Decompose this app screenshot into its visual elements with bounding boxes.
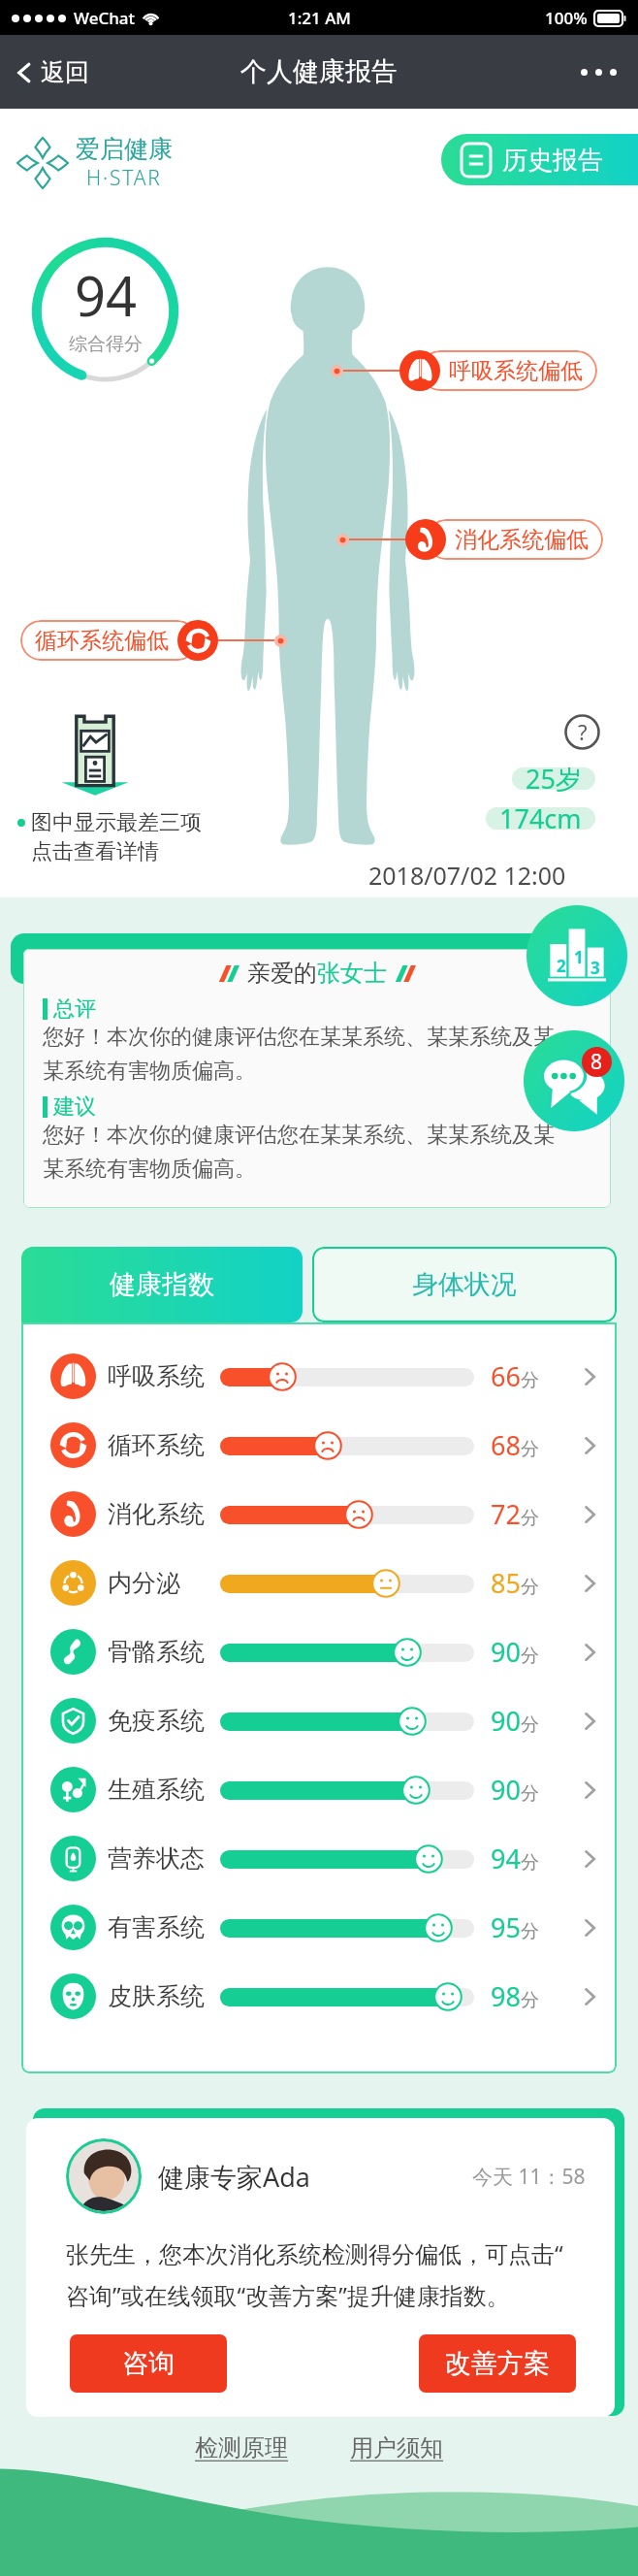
button[interactable]: 循环系统偏低 [41,620,287,661]
button[interactable]: 骨骼系统 [21,1617,617,1686]
button[interactable]: Messages [524,1030,624,1131]
button[interactable]: 生殖系统 [21,1755,617,1824]
staticText: 68 [491,1427,521,1463]
staticText: 皮肤系统 [108,1981,220,2011]
button[interactable]: 检测原理 [183,2429,300,2466]
button[interactable]: 改善方案 [419,2334,576,2393]
staticText: 90 [491,1703,521,1739]
staticText: 1:21 AM [288,7,351,29]
staticText: 分 [521,1851,539,1875]
button[interactable]: 身体状况 [312,1247,617,1322]
staticText: 98 [491,1978,521,2014]
staticText: WeChat [74,7,136,29]
staticText: 历史报告 [502,145,603,177]
staticText: 咨询 [122,2347,175,2380]
button[interactable]: 营养状态 [21,1824,617,1893]
staticText: 您好！本次你的健康评估您在某某系统、某某系统及某 某系统有害物质偏高。 [43,1122,555,1183]
button[interactable]: 皮肤系统 [21,1962,617,2031]
staticText: 72 [491,1496,521,1532]
button[interactable]: 呼吸系统偏低 [331,350,577,391]
staticText: H·STAR [86,164,162,192]
staticText: 免疫系统 [108,1706,220,1736]
staticText: 呼吸系统偏低 [449,357,583,385]
staticText: 循环系统偏低 [35,627,169,655]
staticText: 总评 [53,995,96,1023]
staticText: 3 [590,957,600,979]
staticText: 亲爱的 [247,959,317,988]
button[interactable]: 健康指数 [21,1247,303,1322]
staticText: 骨骼系统 [108,1637,220,1667]
button[interactable]: 用户须知 [338,2429,455,2466]
button[interactable]: 历史报告 [441,134,638,185]
staticText: 用户须知 [350,2433,443,2462]
staticText: 有害系统 [108,1912,220,1942]
staticText: 生殖系统 [108,1775,220,1805]
staticText: 90 [491,1634,521,1670]
staticText: 图中显示最差三项 [31,809,202,836]
staticText: 消化系统 [108,1499,220,1529]
staticText: 个人健康报告 [240,55,398,88]
staticText: 25岁 [526,761,582,797]
staticText: 消化系统偏低 [455,526,589,554]
button[interactable]: More options [559,53,638,91]
staticText: 返回 [41,57,89,87]
staticText: 1 [574,946,584,968]
button[interactable]: 循环系统 [21,1411,617,1480]
staticText: 张先生，您本次消化系统检测得分偏低，可点击“ 咨询”或在线领取“改善方案”提升健… [66,2237,563,2311]
staticText: 营养状态 [108,1843,220,1874]
staticText: 爱启健康 [76,134,173,164]
staticText: 分 [521,1920,539,1943]
staticText: 张女士 [317,959,387,988]
staticText: 100% [545,7,588,29]
button[interactable]: 消化系统 [21,1480,617,1549]
staticText: 健康专家Ada [158,2159,311,2195]
staticText: 90 [491,1772,521,1808]
staticText: 2 [557,955,566,977]
staticText: 内分泌 [108,1568,220,1598]
staticText: 分 [521,1782,539,1806]
staticText: 174cm [499,800,582,836]
staticText: 分 [521,1369,539,1392]
button[interactable]: Ranking [526,905,627,1006]
button[interactable]: 内分泌 [21,1549,617,1617]
button[interactable]: 呼吸系统 [21,1342,617,1411]
staticText: 分 [521,1576,539,1599]
staticText: 建议 [53,1093,96,1121]
staticText: 95 [491,1909,521,1945]
staticText: 点击查看详情 [31,838,159,865]
button[interactable]: 消化系统偏低 [336,519,583,560]
staticText: 改善方案 [445,2347,550,2380]
staticText: 94 [491,1841,521,1876]
staticText: 分 [521,1438,539,1461]
staticText: 2018/07/02 12:00 [368,859,566,892]
staticText: 综合得分 [69,333,143,356]
staticText: 分 [521,1507,539,1530]
staticText: 94 [75,258,138,332]
button[interactable]: 咨询 [70,2334,227,2393]
staticText: 检测原理 [195,2433,288,2462]
staticText: 66 [491,1358,521,1394]
staticText: 85 [491,1565,521,1601]
staticText: ? [578,717,588,746]
button[interactable]: Help [564,714,600,750]
staticText: 健康指数 [110,1268,214,1301]
button[interactable]: 返回 [0,48,103,97]
staticText: 8 [590,1048,603,1076]
staticText: 分 [521,1713,539,1737]
staticText: 身体状况 [412,1268,517,1301]
staticText: 分 [521,1989,539,2012]
button[interactable]: 有害系统 [21,1893,617,1962]
staticText: 循环系统 [108,1430,220,1460]
staticText: 今天 11：58 [472,2163,586,2191]
staticText: 您好！本次你的健康评估您在某某系统、某某系统及某 某系统有害物质偏高。 [43,1024,555,1085]
staticText: 分 [521,1645,539,1668]
staticText: 呼吸系统 [108,1361,220,1391]
button[interactable]: 免疫系统 [21,1686,617,1755]
